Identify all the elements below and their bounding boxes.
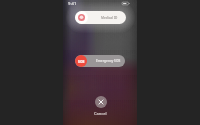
button[interactable]: Medical ID <box>75 11 126 24</box>
button[interactable]: Emergency SOS <box>75 55 125 67</box>
staticText: Cancel <box>94 111 107 116</box>
staticText: SOS <box>78 59 85 63</box>
staticText: Medical ID <box>101 16 118 20</box>
staticText: 9:41 <box>68 1 77 7</box>
staticText: Emergency SOS <box>96 59 121 63</box>
button[interactable]: Cancel <box>95 96 107 108</box>
